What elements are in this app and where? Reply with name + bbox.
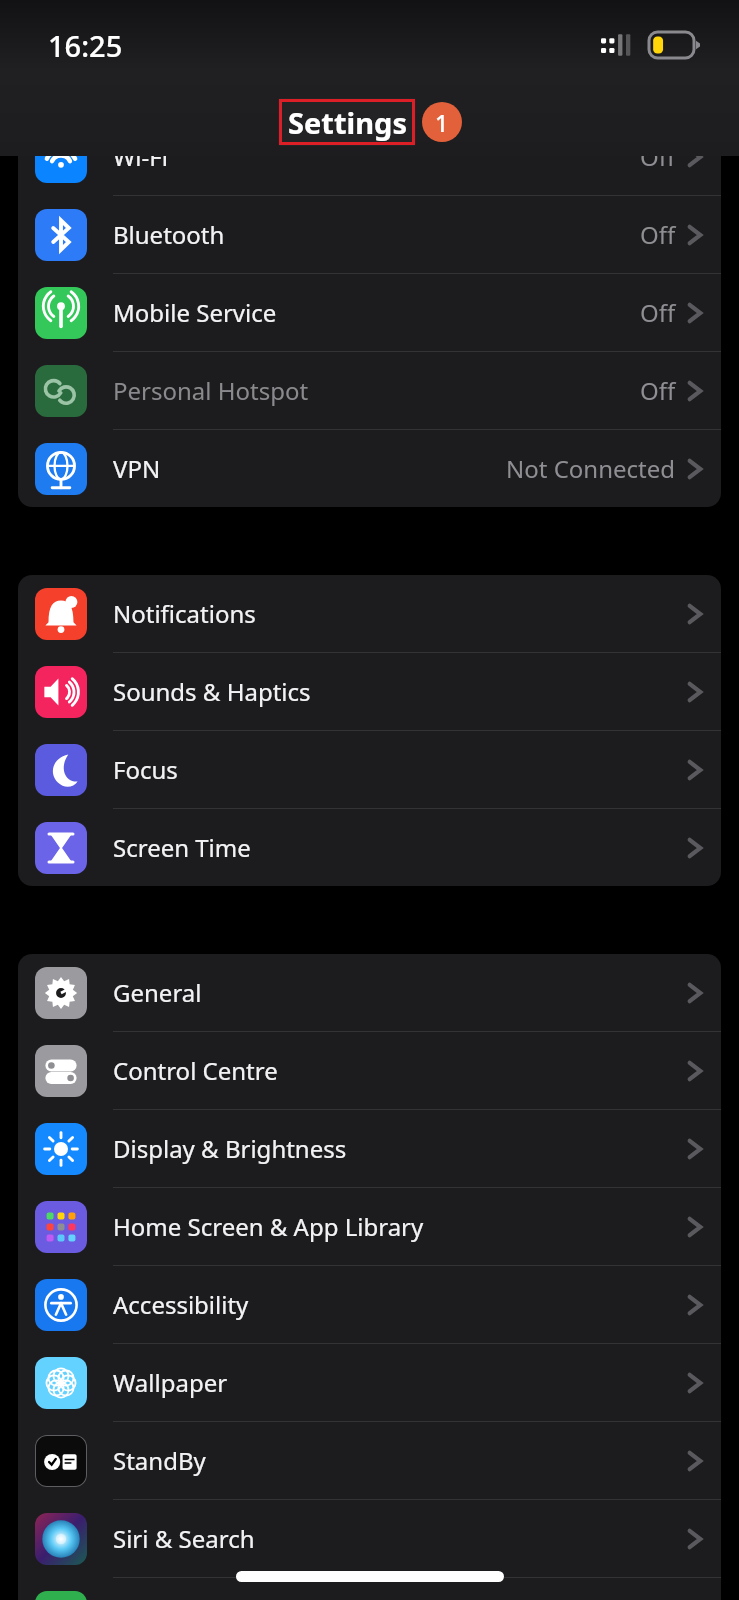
staticText: Off [640,296,676,329]
button[interactable]: Personal Hotspot [18,352,721,429]
button[interactable]: General [18,954,721,1031]
button[interactable]: Display & Brightness [18,1110,721,1187]
button[interactable]: Wallpaper [18,1344,721,1421]
button[interactable]: Accessibility [18,1266,721,1343]
staticText: Wi-Fi [113,140,168,173]
button[interactable]: Screen Time [18,809,721,886]
staticText: Control Centre [113,1054,278,1087]
button[interactable]: Wi-Fi [18,118,721,195]
staticText: 1 [435,107,449,138]
staticText: Focus [113,753,178,786]
staticText: Screen Time [113,831,251,864]
button[interactable]: Notifications [18,575,721,652]
button[interactable]: Face ID & Passcode [18,1578,721,1600]
staticText: StandBy [113,1444,206,1477]
staticText: Off [640,374,676,407]
staticText: Display & Brightness [113,1132,347,1165]
staticText: Siri & Search [113,1522,255,1555]
staticText: Personal Hotspot [113,374,309,407]
staticText: Not Connected [506,452,676,485]
button[interactable]: Sounds & Haptics [18,653,721,730]
button[interactable]: Focus [18,731,721,808]
staticText: Bluetooth [113,218,225,251]
button[interactable]: Siri & Search [18,1500,721,1577]
staticText: Home Screen & App Library [113,1210,424,1243]
staticText: General [113,976,202,1009]
button[interactable]: StandBy [18,1422,721,1499]
staticText: Mobile Service [113,296,277,329]
staticText: Settings [288,103,407,142]
staticText: Off [640,140,676,173]
button[interactable]: Control Centre [18,1032,721,1109]
staticText: Notifications [113,597,256,630]
button[interactable]: Mobile Service [18,274,721,351]
staticText: VPN [113,452,161,485]
button[interactable]: VPN [18,430,721,507]
button[interactable]: Home Screen & App Library [18,1188,721,1265]
staticText: Off [640,218,676,251]
staticText: Wallpaper [113,1366,228,1399]
staticText: Accessibility [113,1288,249,1321]
staticText: Sounds & Haptics [113,675,311,708]
button[interactable]: Bluetooth [18,196,721,273]
staticText: 16:25 [48,26,123,65]
